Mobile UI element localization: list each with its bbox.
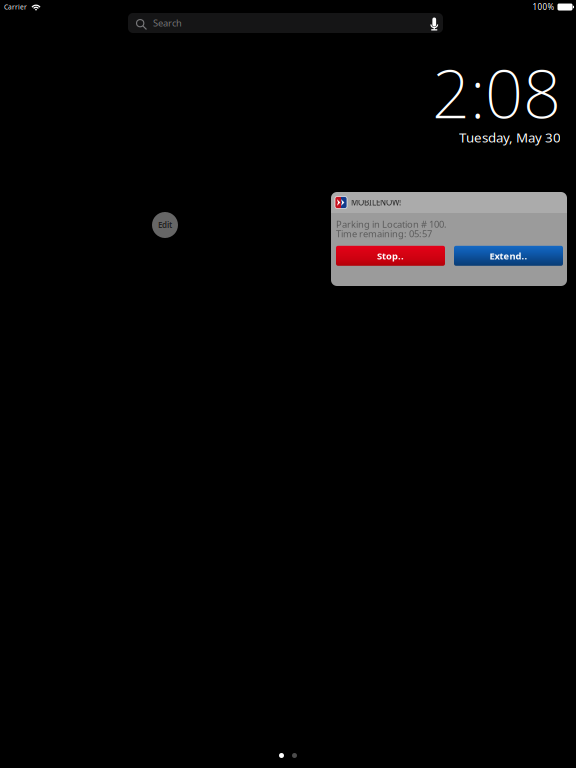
button[interactable]: Page 2 [292, 753, 297, 758]
button[interactable]: Stop.. [336, 246, 445, 266]
button[interactable]: MOBILENOW! [331, 192, 567, 213]
staticText: 2:08 [432, 48, 561, 136]
staticText: Edit [158, 220, 172, 230]
button[interactable]: Extend.. [454, 246, 563, 266]
staticText: Extend.. [489, 250, 527, 262]
button[interactable]: Page 1 [279, 753, 284, 758]
staticText: Search [153, 17, 182, 29]
staticText: 100% [532, 2, 554, 12]
button[interactable]: Search [128, 13, 443, 33]
staticText: Stop.. [377, 250, 404, 262]
staticText: Tuesday, May 30 [459, 128, 561, 146]
button[interactable]: Edit [152, 212, 178, 238]
staticText: Carrier [4, 3, 27, 11]
staticText: MOBILENOW! [351, 197, 401, 208]
staticText: Time remaining: 05:57 [336, 227, 432, 240]
staticText: Parking in Location # 100. [336, 218, 447, 230]
